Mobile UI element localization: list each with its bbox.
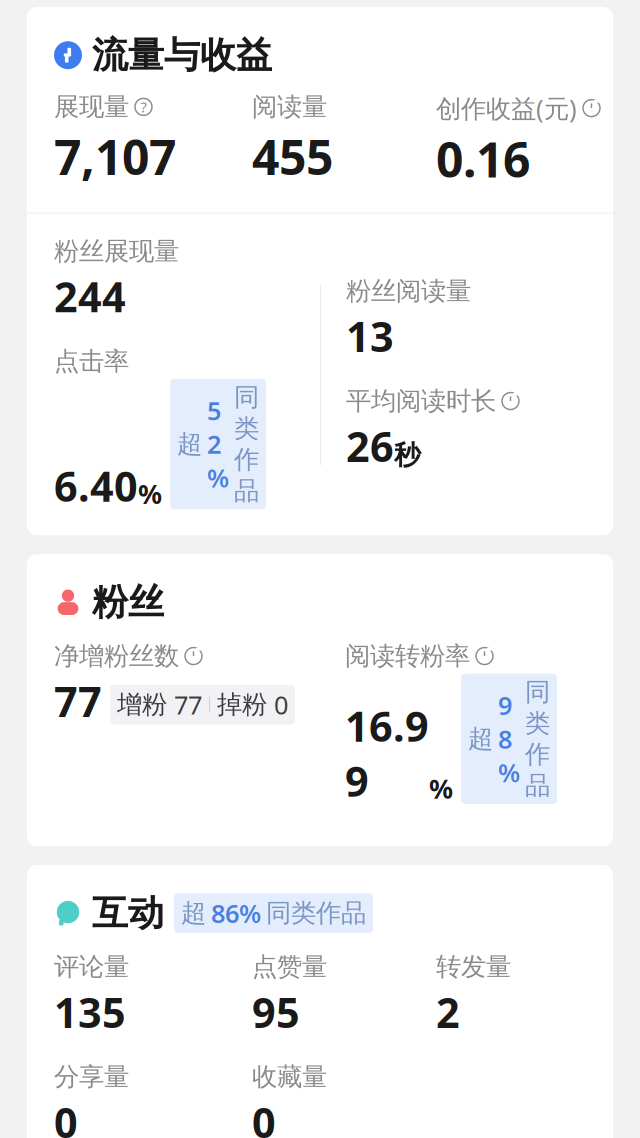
- staticText: 7,107: [54, 124, 176, 188]
- staticText: 净增粉丝数: [54, 640, 179, 672]
- staticText: 粉丝展现量: [54, 236, 179, 267]
- staticText: 评论量: [54, 951, 129, 982]
- staticText: 0: [274, 688, 288, 721]
- staticText: 超: [181, 898, 206, 929]
- staticText: %: [429, 771, 453, 806]
- staticText: 阅读量: [252, 91, 327, 122]
- staticText: 阅读转粉率: [345, 640, 470, 672]
- staticText: 粉丝: [92, 580, 164, 624]
- staticText: 同类作品: [525, 677, 550, 801]
- staticText: 增粉: [117, 689, 167, 720]
- staticText: 点击率: [54, 346, 129, 377]
- staticText: 分享量: [54, 1061, 129, 1092]
- staticText: 77: [174, 688, 202, 721]
- staticText: 0: [54, 1094, 78, 1138]
- staticText: 同类作品: [234, 382, 259, 506]
- staticText: 超: [468, 723, 493, 754]
- staticText: 135: [54, 984, 126, 1039]
- staticText: 互动: [92, 891, 164, 935]
- staticText: 同类作品: [266, 898, 366, 929]
- staticText: 77: [54, 674, 102, 728]
- staticText: %: [138, 476, 162, 511]
- staticText: 13: [346, 309, 394, 363]
- staticText: 0.16: [436, 127, 530, 191]
- staticText: 98%: [498, 688, 520, 789]
- staticText: 平均阅读时长: [346, 385, 496, 417]
- staticText: 收藏量: [252, 1061, 327, 1092]
- staticText: 创作收益(元): [436, 91, 577, 125]
- staticText: 26: [346, 419, 394, 473]
- staticText: 52%: [207, 394, 229, 494]
- staticText: 转发量: [436, 951, 511, 982]
- staticText: 超: [177, 428, 202, 460]
- staticText: 秒: [394, 439, 421, 471]
- staticText: ?: [140, 97, 146, 117]
- staticText: 86%: [211, 896, 261, 930]
- staticText: 粉丝阅读量: [346, 275, 471, 307]
- staticText: 2: [436, 984, 460, 1039]
- staticText: 244: [54, 269, 126, 324]
- staticText: 95: [252, 984, 300, 1039]
- staticText: 0: [252, 1094, 276, 1138]
- staticText: 6.40: [54, 458, 138, 513]
- staticText: 展现量: [54, 91, 129, 122]
- staticText: 点赞量: [252, 951, 327, 982]
- staticText: 455: [252, 124, 333, 188]
- staticText: 流量与收益: [92, 33, 272, 77]
- staticText: 掉粉: [217, 689, 267, 720]
- staticText: 16.99: [345, 698, 429, 808]
